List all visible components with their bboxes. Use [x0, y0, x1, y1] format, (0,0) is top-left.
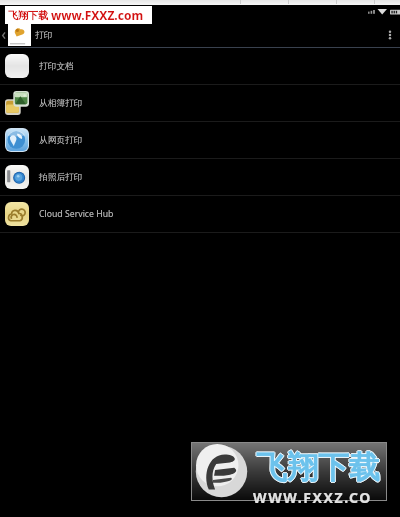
button[interactable]: Cloud Service Hub [0, 196, 400, 233]
staticText: 飞翔下载 [8, 9, 48, 22]
staticText: 飞翔下载 [257, 448, 381, 487]
staticText: 打印 [35, 30, 53, 41]
staticText: 飞翔下载 [255, 448, 379, 487]
staticText: 飞翔下载 [256, 448, 380, 487]
staticText: 打印文档 [39, 61, 74, 72]
button[interactable]: 从网页打印 [0, 122, 400, 159]
staticText: www.FXXZ.com [51, 7, 144, 23]
button[interactable]: Back [0, 23, 7, 47]
staticText: 飞翔下载 [256, 447, 380, 486]
button[interactable]: 拍照后打印 [0, 159, 400, 196]
staticText: 拍照后打印 [39, 172, 83, 183]
staticText: WWW.FXXZ.COM [253, 488, 383, 505]
button[interactable]: More options [380, 23, 400, 47]
button[interactable]: 从相簿打印 [0, 85, 400, 122]
staticText: 从相簿打印 [39, 98, 83, 109]
staticText: 飞翔下载 [256, 449, 380, 488]
button[interactable]: 打印文档 [0, 48, 400, 85]
staticText: Cloud Service Hub [39, 208, 114, 220]
staticText: 从网页打印 [39, 135, 83, 146]
